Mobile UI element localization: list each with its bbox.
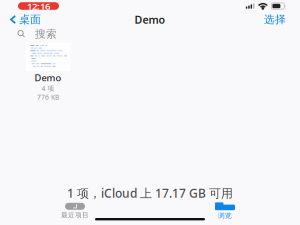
staticText: 搜索 — [35, 27, 57, 40]
staticText: 1 项，iCloud 上 17.17 GB 可用 — [67, 185, 233, 201]
button[interactable]: 搜索 — [0, 27, 300, 41]
button[interactable]: Demo — [14, 43, 82, 102]
button[interactable]: 选择 — [250, 11, 300, 28]
staticText: 浏览 — [218, 211, 232, 220]
staticText: 776 KB — [37, 93, 59, 102]
staticText: 4 项 — [41, 84, 54, 93]
button[interactable]: 桌面 — [0, 11, 51, 28]
staticText: 选择 — [264, 13, 286, 26]
staticText: 桌面 — [19, 13, 41, 26]
button[interactable]: 最近项目 — [0, 203, 150, 219]
staticText: Demo — [134, 12, 165, 27]
staticText: Demo — [34, 71, 61, 84]
staticText: 最近项目 — [61, 211, 89, 219]
staticText: 12:16 — [27, 0, 50, 13]
button[interactable]: 浏览 — [150, 202, 300, 220]
